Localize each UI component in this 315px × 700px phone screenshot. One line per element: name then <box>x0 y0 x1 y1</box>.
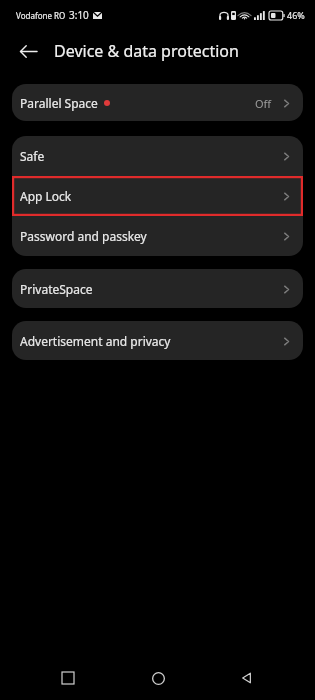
button[interactable]: Advertisement and privacy <box>12 321 303 360</box>
button[interactable]: Password and passkey <box>12 216 303 256</box>
staticText: Safe <box>20 148 45 164</box>
button[interactable]: App Lock <box>12 176 303 216</box>
button[interactable]: PrivateSpace <box>12 269 303 308</box>
staticText: App Lock <box>20 188 72 204</box>
button[interactable]: Back <box>8 31 48 71</box>
staticText: 46% <box>287 9 305 21</box>
staticText: Password and passkey <box>20 228 147 244</box>
staticText: Vodafone RO <box>16 10 66 21</box>
button[interactable]: Parallel Space <box>12 84 303 121</box>
button[interactable]: Safe <box>12 136 303 176</box>
staticText: Advertisement and privacy <box>20 333 171 349</box>
button[interactable]: Home <box>136 656 180 700</box>
staticText: PrivateSpace <box>20 281 93 297</box>
staticText: Parallel Space <box>20 95 98 111</box>
button[interactable]: Back <box>225 656 269 700</box>
staticText: Off <box>255 96 272 111</box>
staticText: 3:10 <box>69 8 89 22</box>
staticText: Device & data protection <box>54 40 239 62</box>
button[interactable]: Recents <box>46 656 90 700</box>
